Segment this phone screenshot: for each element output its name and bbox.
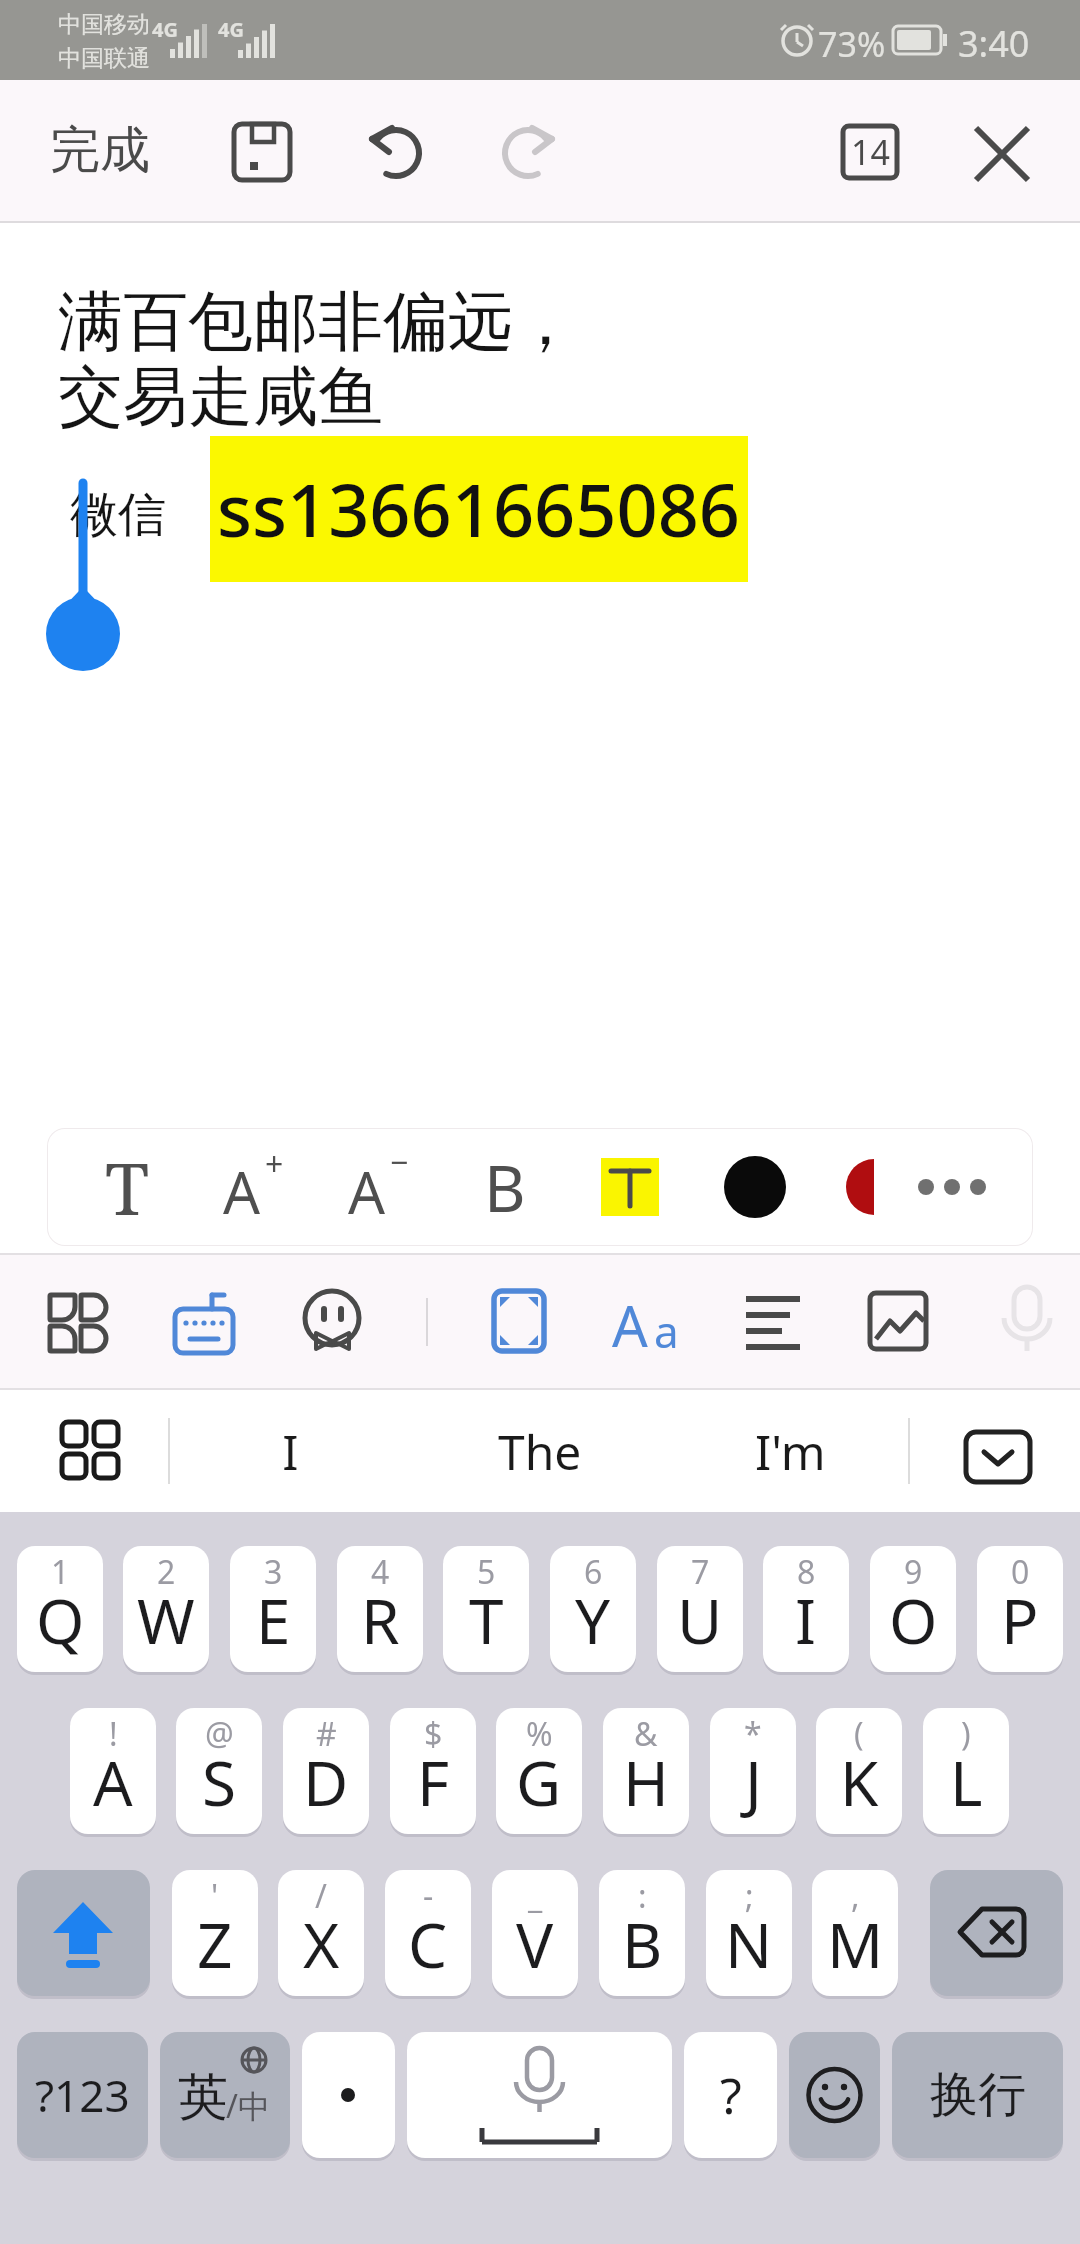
button[interactable]: A <box>340 1128 420 1246</box>
button[interactable]: T <box>97 1128 157 1246</box>
staticText: M <box>827 1902 884 1986</box>
staticText: 7 <box>691 1550 710 1594</box>
button[interactable] <box>601 1158 659 1216</box>
staticText: − <box>390 1140 409 1184</box>
staticText: a <box>654 1301 679 1361</box>
button[interactable]: The <box>380 1390 700 1512</box>
button[interactable] <box>789 2032 880 2158</box>
button[interactable]: 9 <box>870 1546 956 1672</box>
staticText: F <box>417 1740 450 1824</box>
button[interactable]: 0 <box>977 1546 1063 1672</box>
staticText: J <box>745 1740 762 1824</box>
staticText: Z <box>197 1902 233 1986</box>
button[interactable]: ! <box>70 1708 156 1834</box>
button[interactable]: 14 <box>841 124 899 180</box>
staticText: 换行 <box>930 2065 1026 2125</box>
button[interactable]: % <box>496 1708 582 1834</box>
button[interactable]: & <box>603 1708 689 1834</box>
button[interactable]: $ <box>390 1708 476 1834</box>
staticText: C <box>408 1902 448 1986</box>
button[interactable] <box>48 1293 108 1353</box>
button[interactable]: @ <box>176 1708 262 1834</box>
staticText: K <box>840 1740 879 1824</box>
button[interactable]: - <box>385 1870 471 1996</box>
button[interactable]: _ <box>492 1870 578 1996</box>
staticText: % <box>526 1712 553 1756</box>
button[interactable] <box>930 1870 1063 1996</box>
button[interactable] <box>302 1289 366 1355</box>
button[interactable] <box>17 1870 150 1996</box>
button[interactable]: 7 <box>657 1546 743 1672</box>
button[interactable]: 6 <box>550 1546 636 1672</box>
button[interactable]: 2 <box>123 1546 209 1672</box>
staticText: ; <box>745 1874 754 1918</box>
button[interactable]: A <box>215 1128 295 1246</box>
staticText: 3:40 <box>958 19 1030 68</box>
button[interactable] <box>724 1156 786 1218</box>
button[interactable]: * <box>710 1708 796 1834</box>
button[interactable] <box>230 120 294 184</box>
button[interactable]: 5 <box>443 1546 529 1672</box>
button[interactable] <box>60 1420 122 1482</box>
button[interactable] <box>495 120 559 184</box>
button[interactable]: # <box>283 1708 369 1834</box>
button[interactable] <box>902 1128 1002 1246</box>
staticText: + <box>265 1142 284 1186</box>
staticText: I <box>795 1578 817 1662</box>
staticText: O <box>889 1578 938 1662</box>
staticText: ' <box>211 1874 219 1918</box>
button[interactable] <box>492 1289 548 1355</box>
button[interactable]: ) <box>923 1708 1009 1834</box>
staticText: G <box>516 1740 562 1824</box>
button[interactable] <box>964 1430 1034 1486</box>
staticText: 3 <box>264 1550 283 1594</box>
staticText: B <box>484 1144 526 1231</box>
button[interactable]: I'm <box>700 1390 880 1512</box>
button[interactable] <box>302 2032 395 2158</box>
staticText: X <box>303 1902 340 1986</box>
staticText: T <box>105 1138 150 1236</box>
button[interactable]: ; <box>706 1870 792 1996</box>
button[interactable]: 换行 <box>892 2032 1063 2158</box>
staticText: T <box>469 1578 504 1662</box>
button[interactable]: A <box>608 1283 698 1361</box>
staticText: P <box>1001 1578 1039 1662</box>
button[interactable]: ? <box>684 2032 777 2158</box>
button[interactable] <box>968 122 1034 188</box>
button[interactable]: / <box>278 1870 364 1996</box>
staticText: A <box>93 1740 133 1824</box>
staticText: 满百包邮非偏远， <box>58 281 578 363</box>
button[interactable]: 8 <box>763 1546 849 1672</box>
button[interactable]: 4 <box>337 1546 423 1672</box>
staticText: _ <box>528 1874 543 1918</box>
button[interactable] <box>174 1287 236 1357</box>
button[interactable]: ( <box>816 1708 902 1834</box>
button[interactable] <box>407 2032 672 2158</box>
button[interactable] <box>868 1291 930 1353</box>
staticText: ? <box>720 2061 742 2129</box>
staticText: 73% <box>818 21 886 67</box>
button[interactable]: , <box>812 1870 898 1996</box>
staticText: - <box>423 1874 434 1918</box>
staticText: $ <box>424 1712 443 1756</box>
button[interactable] <box>746 1295 802 1351</box>
staticText: / <box>315 1874 327 1918</box>
staticText: W <box>137 1578 195 1662</box>
button[interactable]: : <box>599 1870 685 1996</box>
button[interactable]: ' <box>172 1870 258 1996</box>
staticText: ( <box>854 1712 864 1756</box>
button[interactable] <box>1000 1287 1080 1359</box>
button[interactable] <box>365 120 429 184</box>
staticText: 完成 <box>50 119 150 182</box>
button[interactable]: 1 <box>17 1546 103 1672</box>
staticText: 9 <box>904 1550 923 1594</box>
button[interactable]: B <box>475 1128 535 1246</box>
button[interactable]: ?123 <box>17 2032 148 2158</box>
button[interactable]: 3 <box>230 1546 316 1672</box>
button[interactable]: 完成 <box>30 115 170 185</box>
staticText: 1 <box>51 1550 70 1594</box>
staticText: 4G <box>218 16 244 43</box>
button[interactable]: 英 <box>160 2032 290 2158</box>
button[interactable] <box>846 1159 902 1215</box>
staticText: ?123 <box>35 2065 130 2125</box>
